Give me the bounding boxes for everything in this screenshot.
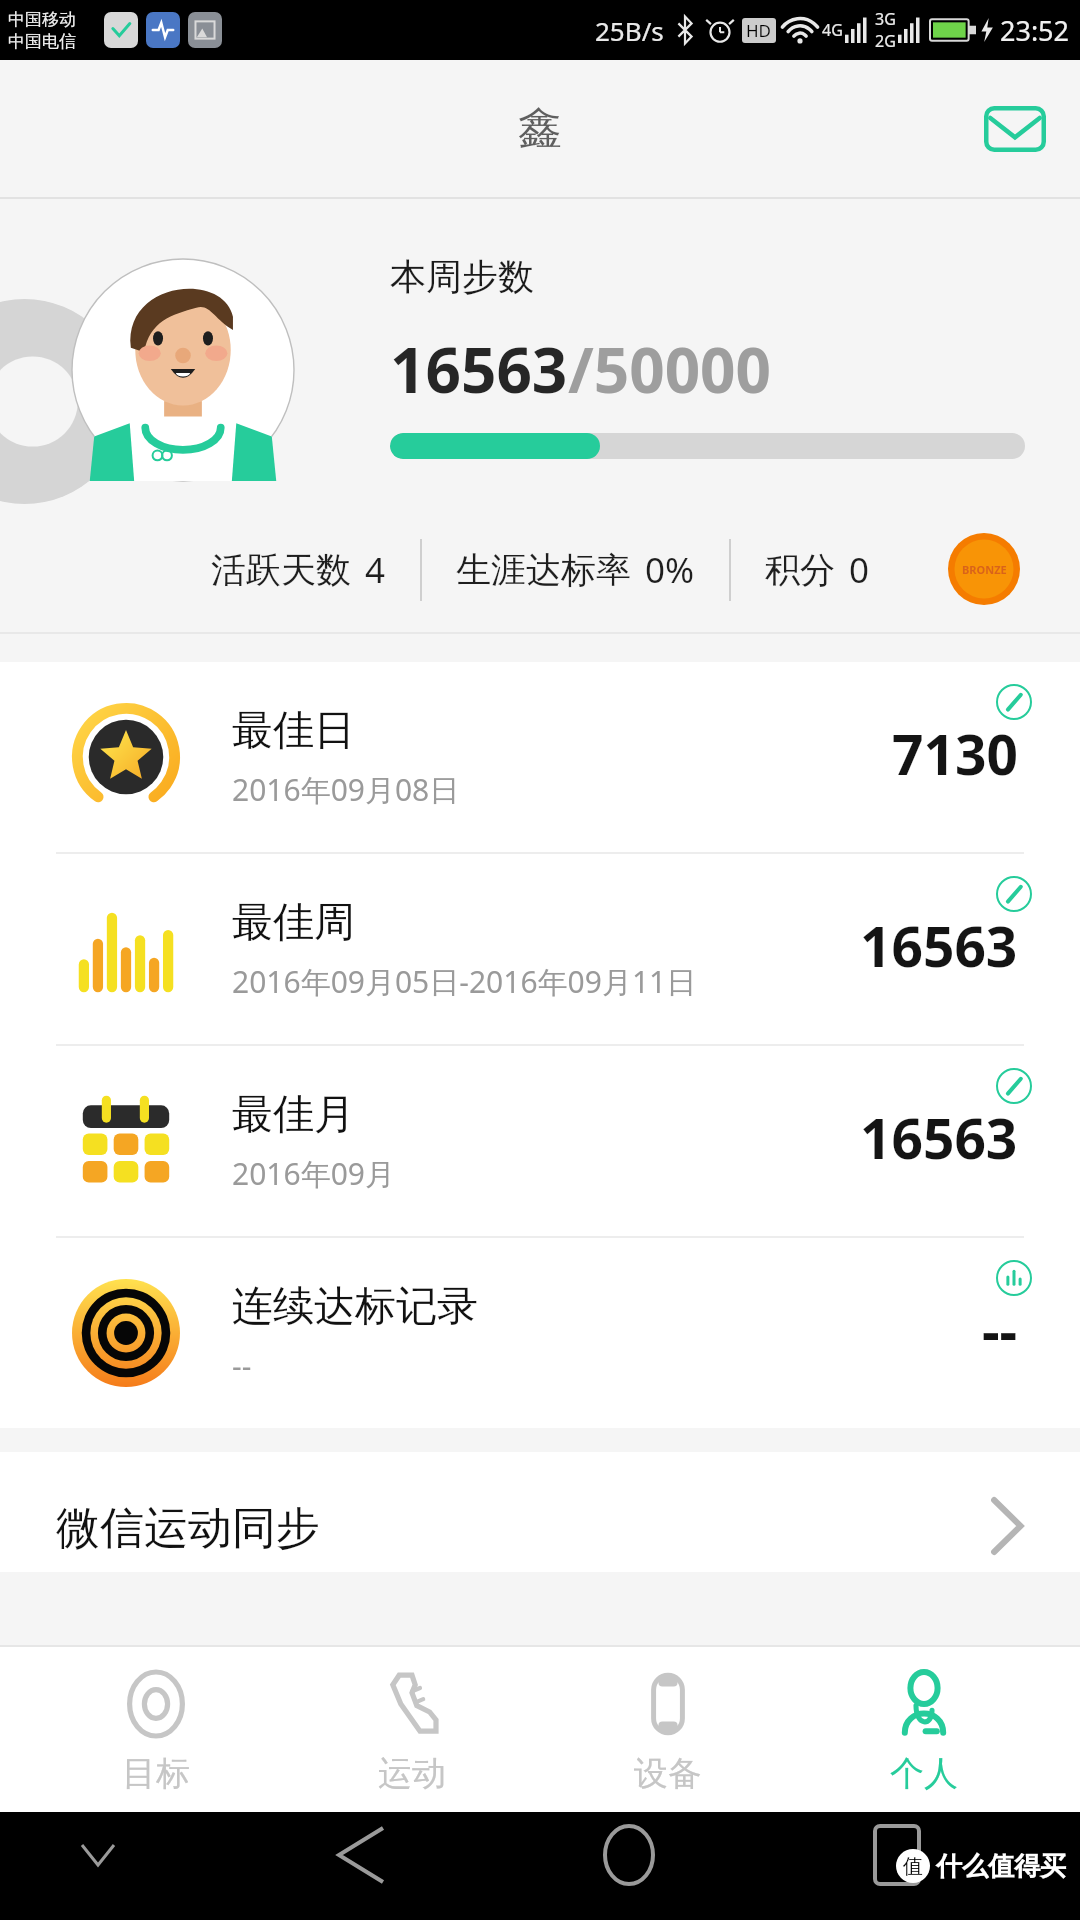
button[interactable]: Edit xyxy=(996,1068,1032,1104)
staticText: 2G xyxy=(875,30,896,52)
staticText: 本周步数 xyxy=(390,254,534,299)
staticText: 什么值得买 xyxy=(936,1850,1066,1883)
staticText: 最佳周 xyxy=(232,897,355,949)
staticText: 值 xyxy=(903,1854,923,1879)
staticText: 2016年09月08日 xyxy=(232,769,460,810)
button[interactable]: 目标 xyxy=(56,1664,256,1795)
staticText: -- xyxy=(982,1292,1018,1367)
staticText: 中国电信 xyxy=(8,31,76,52)
button[interactable]: Back xyxy=(318,1812,404,1898)
staticText: 运动 xyxy=(378,1752,446,1795)
staticText: 活跃天数 xyxy=(211,548,351,592)
button[interactable]: Edit xyxy=(996,684,1032,720)
staticText: 鑫 xyxy=(518,101,562,156)
staticText: 16563 xyxy=(860,908,1018,983)
button[interactable]: Hide xyxy=(60,1817,136,1893)
button[interactable]: 最佳月 xyxy=(0,1046,1080,1236)
staticText: 生涯达标率 xyxy=(456,548,631,592)
button[interactable]: 微信运动同步 xyxy=(0,1452,1080,1572)
staticText: 连续达标记录 xyxy=(232,1281,478,1333)
staticText: 目标 xyxy=(122,1752,190,1795)
button[interactable]: Home xyxy=(586,1812,672,1898)
staticText: 2016年09月05日-2016年09月11日 xyxy=(232,961,697,1002)
staticText: 0% xyxy=(645,546,695,594)
staticText: 中国移动 xyxy=(8,9,76,30)
staticText: 16563 xyxy=(390,327,568,411)
button[interactable]: 生涯达标率 xyxy=(456,546,695,594)
button[interactable]: 活跃天数 xyxy=(211,546,386,594)
button[interactable]: 最佳周 xyxy=(0,854,1080,1044)
staticText: 7130 xyxy=(892,716,1018,791)
staticText: -- xyxy=(232,1345,252,1386)
button[interactable]: 最佳日 xyxy=(0,662,1080,852)
staticText: 23:52 xyxy=(1000,12,1070,49)
staticText: 0 xyxy=(849,546,870,594)
staticText: 25B/s xyxy=(595,13,664,48)
button[interactable]: Edit xyxy=(996,876,1032,912)
staticText: HD xyxy=(746,19,772,42)
button[interactable]: 个人 xyxy=(824,1664,1024,1795)
button[interactable]: 积分 xyxy=(765,546,870,594)
staticText: 微信运动同步 xyxy=(56,1501,320,1556)
button[interactable]: 连续达标记录 xyxy=(0,1238,1080,1428)
button[interactable]: Messages xyxy=(978,92,1052,166)
staticText: 3G xyxy=(875,8,896,30)
button[interactable]: Chart xyxy=(996,1260,1032,1296)
staticText: 最佳月 xyxy=(232,1089,355,1141)
staticText: 4 xyxy=(365,546,386,594)
staticText: 4G xyxy=(822,19,843,41)
button[interactable]: 运动 xyxy=(312,1664,512,1795)
staticText: 设备 xyxy=(634,1752,702,1795)
button[interactable]: 设备 xyxy=(568,1664,768,1795)
staticText: BRONZE xyxy=(962,562,1007,577)
staticText: 最佳日 xyxy=(232,705,355,757)
staticText: 16563 xyxy=(860,1100,1018,1175)
staticText: 个人 xyxy=(890,1752,958,1795)
staticText: 积分 xyxy=(765,548,835,592)
staticText: /50000 xyxy=(568,327,772,411)
button[interactable]: Recents xyxy=(854,1812,940,1898)
staticText: 2016年09月 xyxy=(232,1153,395,1194)
